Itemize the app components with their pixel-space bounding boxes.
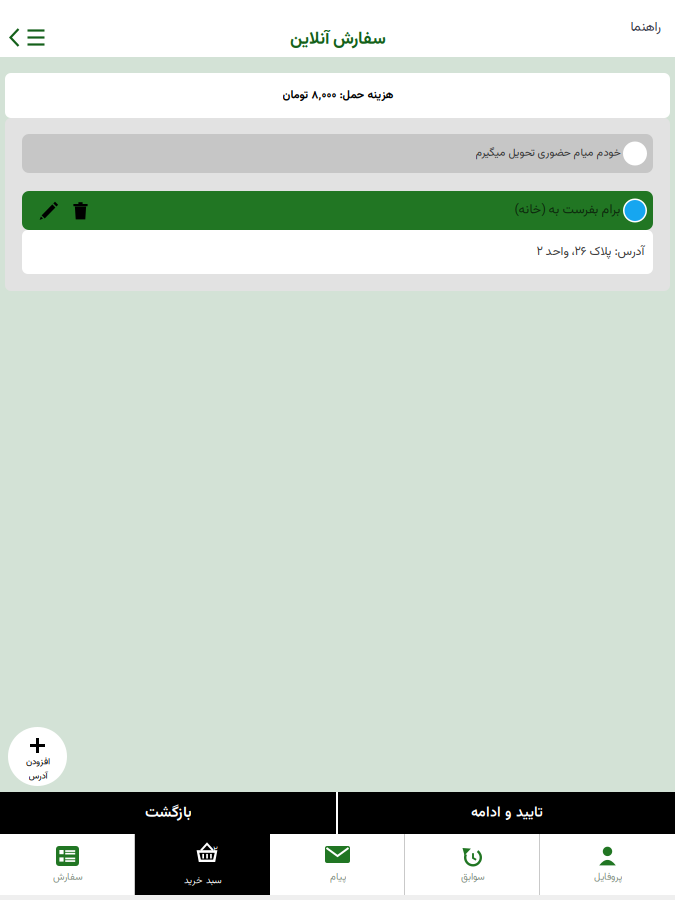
staticText: هزینه حمل: ۸,۰۰۰ تومان: [282, 87, 393, 104]
staticText: آدرس: پلاک ۲۶، واحد ۲: [536, 242, 644, 262]
button[interactable]: Menu: [24, 28, 48, 46]
staticText: راهنما: [630, 17, 661, 38]
staticText: پیام: [329, 870, 345, 885]
button[interactable]: بازگشت: [0, 792, 336, 834]
staticText: سفارش آنلاین: [289, 26, 385, 53]
staticText: بازگشت: [144, 801, 191, 825]
staticText: تایید و ادامه: [470, 802, 542, 824]
staticText: خودم میام حضوری تحویل میگیرم: [475, 144, 620, 162]
button[interactable]: سوابق: [405, 834, 540, 895]
button[interactable]: Back: [0, 27, 24, 48]
button[interactable]: خودم میام حضوری تحویل میگیرم: [22, 134, 653, 173]
staticText: پروفایل: [593, 870, 621, 885]
button[interactable]: پروفایل: [540, 834, 675, 895]
staticText: آدرس: [28, 769, 47, 783]
staticText: سفارش: [52, 870, 82, 885]
button[interactable]: افزودن: [8, 727, 67, 786]
staticText: سبد خرید: [183, 873, 221, 888]
staticText: سوابق: [460, 870, 484, 885]
button[interactable]: ۲: [135, 834, 270, 895]
button[interactable]: برام بفرست به (خانه): [22, 191, 653, 230]
button[interactable]: تایید و ادامه: [338, 792, 675, 834]
staticText: ۲: [213, 843, 218, 857]
staticText: افزودن: [25, 755, 49, 769]
button[interactable]: سفارش: [0, 834, 135, 895]
staticText: برام بفرست به (خانه): [514, 200, 620, 220]
button[interactable]: پیام: [270, 834, 405, 895]
